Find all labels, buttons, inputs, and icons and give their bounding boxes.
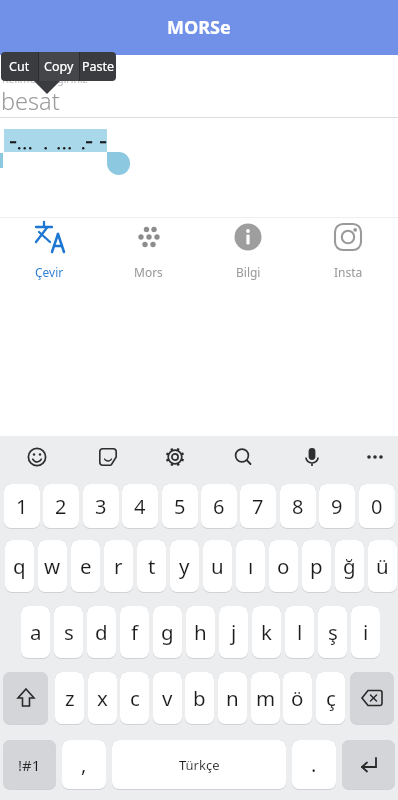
button[interactable]: 7 bbox=[240, 484, 276, 529]
button[interactable]: 4 bbox=[122, 484, 158, 529]
button[interactable]: e bbox=[71, 540, 100, 593]
button[interactable]: Çevir bbox=[0, 218, 99, 280]
staticText: Çevir bbox=[35, 264, 64, 280]
staticText: u bbox=[211, 552, 224, 580]
button[interactable]: 6 bbox=[201, 484, 237, 529]
button[interactable]: f bbox=[120, 606, 149, 659]
staticText: 3 bbox=[95, 493, 107, 520]
button[interactable]: ş bbox=[318, 606, 347, 659]
staticText: b bbox=[193, 684, 206, 712]
button[interactable]: Cut bbox=[1, 52, 38, 81]
button[interactable]: l bbox=[285, 606, 314, 659]
button[interactable] bbox=[342, 740, 395, 790]
staticText: ğ bbox=[343, 552, 356, 580]
button[interactable]: , bbox=[62, 740, 106, 790]
button[interactable]: k bbox=[252, 606, 281, 659]
button[interactable]: v bbox=[153, 672, 182, 725]
button[interactable]: ç bbox=[316, 672, 345, 725]
button[interactable]: Insta bbox=[298, 218, 398, 280]
button[interactable]: !#1 bbox=[3, 740, 56, 790]
button[interactable]: ö bbox=[283, 672, 312, 725]
staticText: i bbox=[363, 618, 369, 646]
staticText: t bbox=[148, 552, 156, 580]
staticText: y bbox=[179, 552, 190, 580]
button[interactable] bbox=[86, 436, 130, 480]
button[interactable] bbox=[353, 436, 397, 480]
staticText: besat bbox=[1, 85, 60, 117]
button[interactable]: ı bbox=[236, 540, 265, 593]
staticText: Copy bbox=[44, 58, 74, 75]
button[interactable]: p bbox=[302, 540, 331, 593]
staticText: f bbox=[131, 618, 139, 646]
button[interactable]: Copy bbox=[39, 52, 79, 81]
button[interactable]: w bbox=[38, 540, 67, 593]
staticText: 5 bbox=[174, 493, 186, 520]
button[interactable]: j bbox=[219, 606, 248, 659]
staticText: a bbox=[30, 618, 42, 646]
button[interactable]: t bbox=[137, 540, 166, 593]
staticText: , bbox=[81, 751, 87, 778]
staticText: c bbox=[130, 684, 140, 712]
staticText: 2 bbox=[55, 493, 67, 520]
button[interactable]: y bbox=[170, 540, 199, 593]
button[interactable]: x bbox=[88, 672, 117, 725]
button[interactable] bbox=[107, 152, 130, 175]
button[interactable]: 3 bbox=[83, 484, 119, 529]
button[interactable]: s bbox=[54, 606, 83, 659]
button[interactable]: h bbox=[186, 606, 215, 659]
staticText: p bbox=[310, 552, 323, 580]
staticText: 1 bbox=[16, 493, 28, 520]
button[interactable] bbox=[4, 129, 107, 152]
staticText: Kelimeden giriniz bbox=[2, 72, 88, 86]
staticText: 7 bbox=[252, 493, 264, 520]
staticText: w bbox=[44, 552, 61, 580]
button[interactable]: 8 bbox=[280, 484, 316, 529]
button[interactable]: ü bbox=[368, 540, 397, 593]
button[interactable] bbox=[15, 436, 59, 480]
button[interactable]: 5 bbox=[162, 484, 198, 529]
button[interactable]: b bbox=[185, 672, 214, 725]
button[interactable]: c bbox=[120, 672, 149, 725]
staticText: q bbox=[13, 552, 26, 580]
button[interactable]: o bbox=[269, 540, 298, 593]
staticText: MORSe bbox=[167, 15, 231, 40]
button[interactable]: q bbox=[5, 540, 34, 593]
button[interactable]: r bbox=[104, 540, 133, 593]
staticText: !#1 bbox=[18, 755, 41, 775]
button[interactable] bbox=[153, 436, 197, 480]
button[interactable]: 0 bbox=[359, 484, 395, 529]
button[interactable]: Paste bbox=[80, 52, 116, 81]
staticText: Paste bbox=[82, 58, 115, 75]
button[interactable]: Mors bbox=[99, 218, 198, 280]
button[interactable]: Türkçe bbox=[112, 740, 286, 790]
button[interactable]: 1 bbox=[4, 484, 40, 529]
button[interactable]: u bbox=[203, 540, 232, 593]
button[interactable]: . bbox=[292, 740, 336, 790]
staticText: 6 bbox=[213, 493, 225, 520]
staticText: n bbox=[226, 684, 239, 712]
button[interactable]: Bilgi bbox=[198, 218, 298, 280]
staticText: ü bbox=[376, 552, 389, 580]
button[interactable] bbox=[350, 672, 394, 725]
button[interactable] bbox=[221, 436, 265, 480]
button[interactable]: g bbox=[153, 606, 182, 659]
button[interactable] bbox=[3, 672, 48, 725]
button[interactable]: d bbox=[87, 606, 116, 659]
staticText: z bbox=[65, 684, 75, 712]
button[interactable] bbox=[290, 436, 334, 480]
staticText: 0 bbox=[371, 493, 383, 520]
button[interactable]: m bbox=[251, 672, 280, 725]
button[interactable]: 9 bbox=[319, 484, 355, 529]
button[interactable]: n bbox=[218, 672, 247, 725]
staticText: ç bbox=[326, 684, 336, 712]
staticText: m bbox=[256, 684, 276, 712]
staticText: ö bbox=[291, 684, 304, 712]
button[interactable]: ğ bbox=[335, 540, 364, 593]
staticText: Bilgi bbox=[236, 264, 261, 280]
staticText: o bbox=[277, 552, 290, 580]
button[interactable]: a bbox=[21, 606, 50, 659]
button[interactable]: 2 bbox=[43, 484, 79, 529]
button[interactable]: z bbox=[55, 672, 84, 725]
button[interactable]: i bbox=[351, 606, 380, 659]
staticText: x bbox=[97, 684, 108, 712]
